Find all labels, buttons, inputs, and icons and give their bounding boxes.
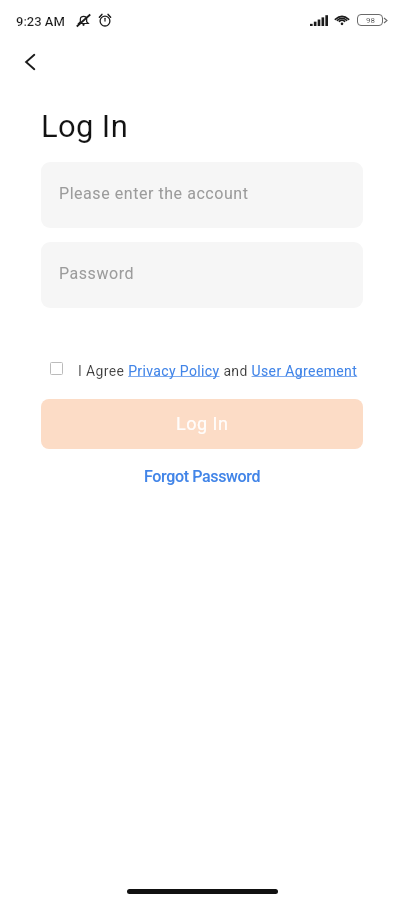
- staticText: I Agree Privacy Policy and User Agreemen…: [78, 363, 358, 379]
- button[interactable]: Forgot Password: [134, 463, 271, 490]
- staticText: Forgot Password: [144, 467, 261, 486]
- button[interactable]: Password: [41, 242, 363, 308]
- staticText: Password: [59, 264, 135, 283]
- button[interactable]: Log In: [41, 399, 363, 449]
- staticText: 9:23 AM: [16, 14, 65, 29]
- button[interactable]: Please enter the account: [41, 162, 363, 228]
- staticText: Please enter the account: [59, 184, 249, 203]
- staticText: Log In: [41, 108, 129, 144]
- staticText: Log In: [176, 413, 229, 434]
- button[interactable]: Back: [15, 44, 51, 80]
- button[interactable]: I Agree checkbox: [50, 362, 63, 375]
- staticText: 98: [366, 16, 375, 25]
